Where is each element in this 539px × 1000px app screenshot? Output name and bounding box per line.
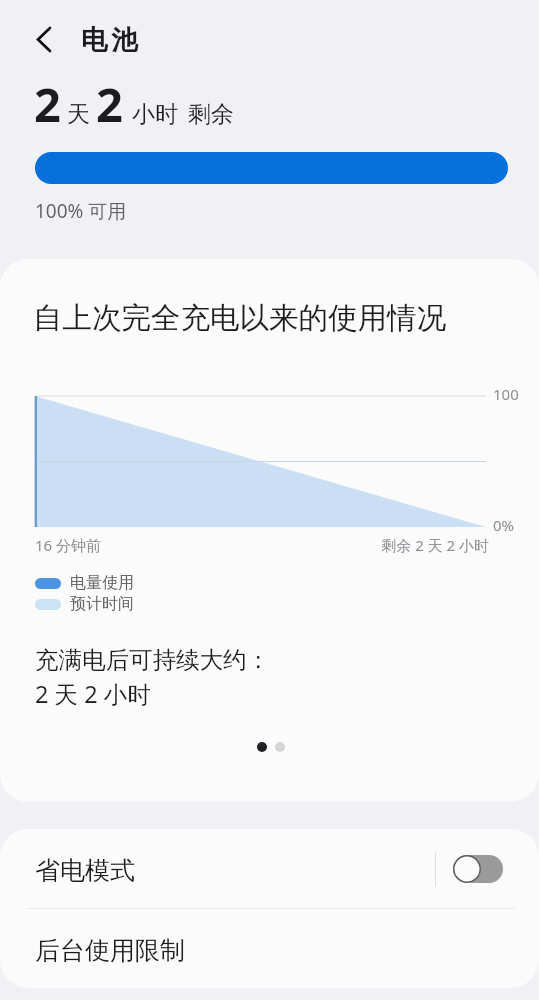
staticText: 0%: [493, 515, 515, 535]
button[interactable]: Back: [22, 17, 66, 61]
staticText: 16 分钟前: [35, 535, 102, 555]
staticText: 预计时间: [70, 594, 134, 614]
staticText: 100: [493, 384, 519, 404]
staticText: 2: [96, 72, 123, 136]
staticText: 天: [67, 100, 90, 129]
button[interactable]: Page 1: [257, 742, 267, 752]
button[interactable]: 后台使用限制: [0, 909, 539, 988]
staticText: 100% 可用: [35, 198, 127, 224]
button[interactable]: Power saving toggle: [453, 855, 503, 883]
staticText: 电池: [81, 23, 142, 56]
staticText: 自上次完全充电以来的使用情况: [33, 300, 446, 337]
staticText: 2 天 2 小时: [35, 678, 151, 710]
staticText: 后台使用限制: [35, 935, 185, 966]
staticText: 剩余 2 天 2 小时: [288, 535, 489, 555]
staticText: 省电模式: [35, 855, 135, 886]
staticText: 充满电后可持续大约：: [35, 645, 270, 675]
staticText: 2: [34, 72, 61, 136]
button[interactable]: 省电模式: [0, 829, 539, 908]
button[interactable]: Page 2: [275, 742, 285, 752]
staticText: 小时: [132, 100, 178, 129]
staticText: 剩余: [188, 100, 234, 129]
staticText: 电量使用: [70, 573, 134, 593]
